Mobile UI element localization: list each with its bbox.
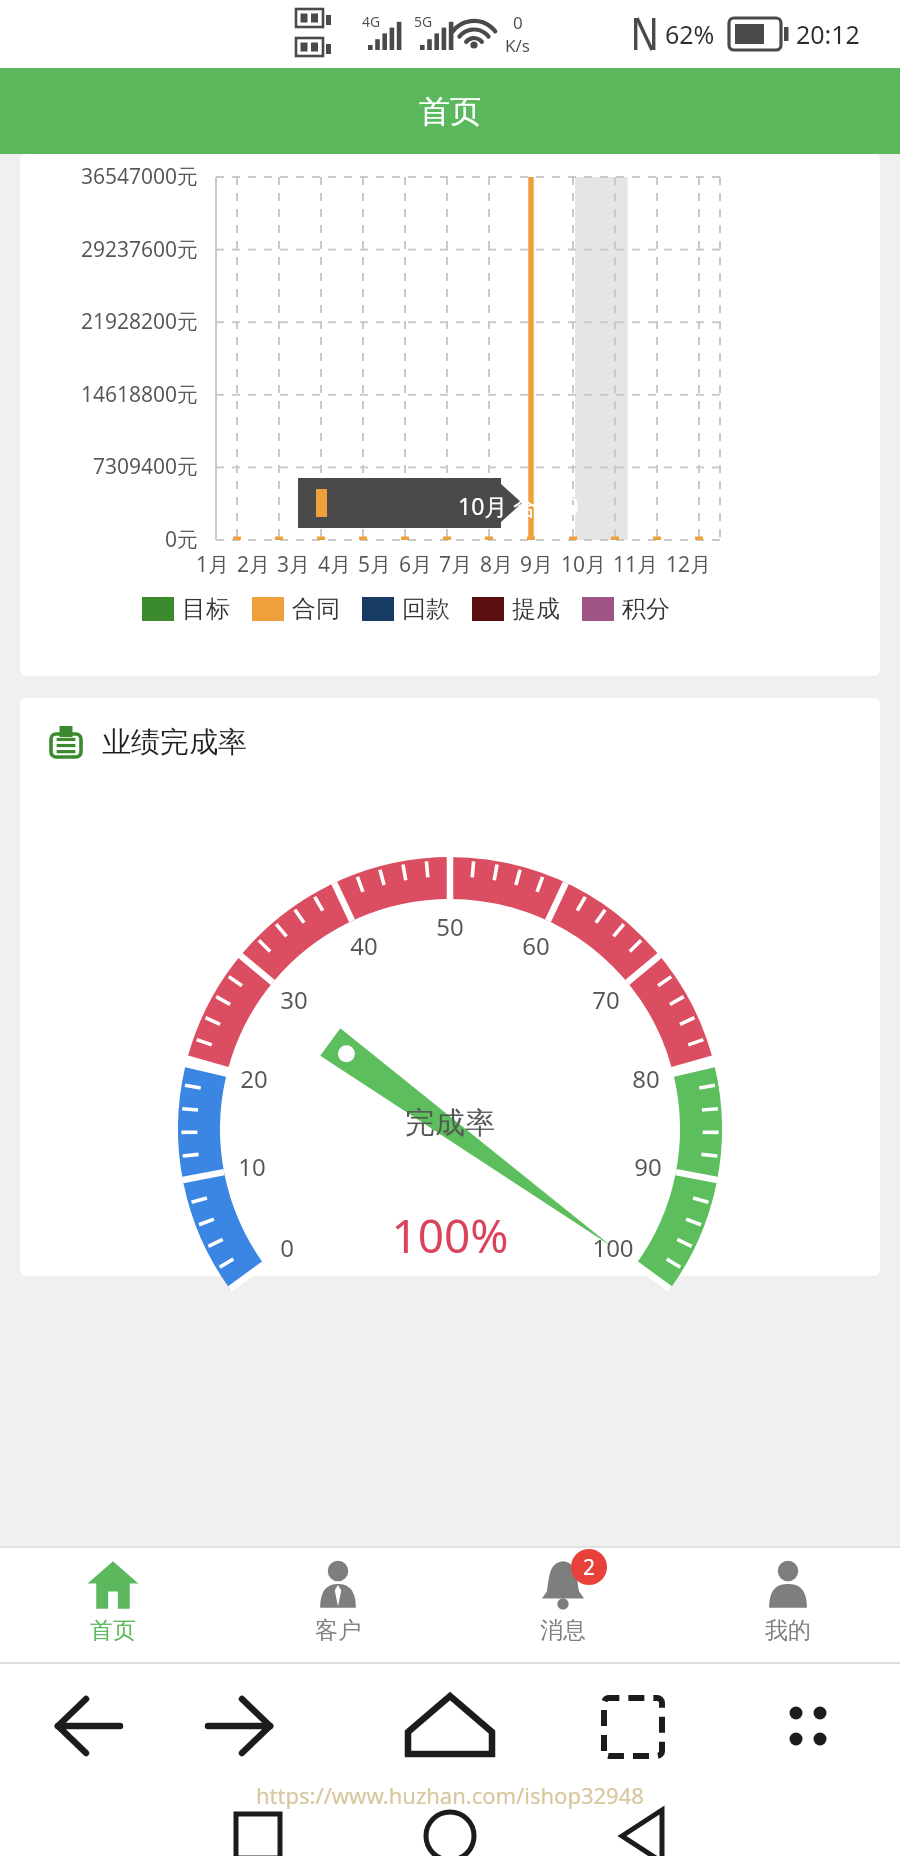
staticText: 100 bbox=[587, 1231, 639, 1264]
other: 我的 bbox=[761, 1558, 815, 1612]
button[interactable]: 业绩完成率 bbox=[20, 698, 880, 1276]
staticText: 5月 bbox=[358, 550, 392, 579]
staticText: 8月 bbox=[480, 550, 514, 579]
other: 首页 bbox=[86, 1558, 140, 1612]
staticText: 60 bbox=[510, 929, 562, 962]
staticText: 30 bbox=[268, 983, 320, 1016]
staticText: 消息 bbox=[540, 1616, 586, 1645]
button[interactable]: 客户 bbox=[225, 1548, 450, 1662]
staticText: 合同 bbox=[292, 594, 340, 624]
staticText: 0 bbox=[513, 11, 523, 34]
staticText: 业绩完成率 bbox=[102, 724, 247, 761]
staticText: 5G bbox=[414, 12, 433, 31]
staticText: 回款 bbox=[402, 594, 450, 624]
staticText: 12月 bbox=[666, 550, 712, 579]
staticText: 29237600元 bbox=[38, 235, 198, 264]
staticText: 提成 bbox=[512, 594, 560, 624]
staticText: 14618800元 bbox=[38, 380, 198, 409]
staticText: 6月 bbox=[399, 550, 433, 579]
staticText: 7月 bbox=[439, 550, 473, 579]
staticText: 100% bbox=[340, 1204, 560, 1267]
staticText: 10 bbox=[226, 1150, 278, 1183]
staticText: K/s bbox=[505, 34, 530, 57]
staticText: 完成率 bbox=[370, 1104, 530, 1142]
button[interactable]: 我的 bbox=[675, 1548, 900, 1662]
other: 客户 bbox=[311, 1558, 365, 1612]
staticText: 80 bbox=[620, 1062, 672, 1095]
staticText: 10月 合同:0 bbox=[458, 490, 579, 521]
button[interactable]: 36547000元 bbox=[20, 154, 880, 676]
staticText: 20 bbox=[228, 1062, 280, 1095]
staticText: 50 bbox=[424, 910, 476, 943]
staticText: 3月 bbox=[277, 550, 311, 579]
staticText: 11月 bbox=[613, 550, 659, 579]
staticText: https://www.huzhan.com/ishop32948 bbox=[256, 1780, 644, 1810]
staticText: 4月 bbox=[318, 550, 352, 579]
staticText: 2 bbox=[583, 1553, 596, 1582]
staticText: 0元 bbox=[38, 525, 198, 554]
staticText: 积分 bbox=[622, 594, 670, 624]
staticText: 36547000元 bbox=[38, 162, 198, 191]
staticText: 4G bbox=[362, 12, 381, 31]
staticText: 7309400元 bbox=[38, 452, 198, 481]
staticText: 目标 bbox=[182, 594, 230, 624]
staticText: 首页 bbox=[419, 92, 481, 131]
staticText: 20:12 bbox=[796, 17, 860, 51]
other: 消息 bbox=[536, 1558, 590, 1612]
staticText: 90 bbox=[622, 1150, 674, 1183]
staticText: 21928200元 bbox=[38, 307, 198, 336]
staticText: 我的 bbox=[765, 1616, 811, 1645]
staticText: 62% bbox=[665, 17, 715, 51]
staticText: 70 bbox=[580, 983, 632, 1016]
staticText: 40 bbox=[338, 929, 390, 962]
staticText: 10月 bbox=[561, 550, 607, 579]
staticText: 1月 bbox=[196, 550, 230, 579]
staticText: 客户 bbox=[315, 1616, 361, 1645]
staticText: 0 bbox=[261, 1231, 313, 1264]
staticText: 首页 bbox=[90, 1616, 136, 1645]
button[interactable]: 首页 bbox=[0, 1548, 225, 1662]
staticText: 9月 bbox=[520, 550, 554, 579]
staticText: 2月 bbox=[237, 550, 271, 579]
button[interactable]: 消息 bbox=[450, 1548, 675, 1662]
